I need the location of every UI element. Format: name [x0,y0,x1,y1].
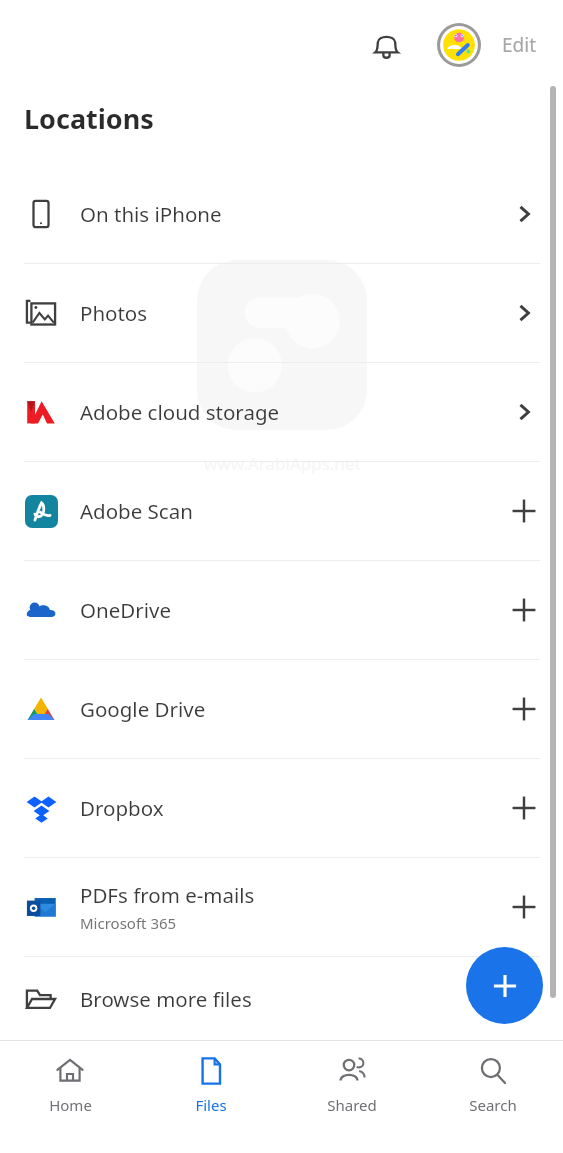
button[interactable]: On this iPhone [0,165,563,263]
button[interactable]: Browse more files [0,957,563,1040]
button[interactable]: Shared [281,1041,422,1153]
staticText: Dropbox [80,794,164,822]
button[interactable]: OneDrive [0,561,563,659]
staticText: Search [469,1095,517,1115]
staticText: Adobe Scan [80,497,193,525]
staticText: OneDrive [80,596,171,624]
staticText: PDFs from e-mails [80,881,255,909]
button[interactable]: Adobe Scan [0,462,563,560]
button[interactable]: Notifications [360,19,412,71]
staticText: Google Drive [80,695,206,723]
staticText: Adobe cloud storage [80,398,280,426]
button[interactable]: PDFs from e-mails [0,858,563,956]
button[interactable]: Adobe cloud storage [0,363,563,461]
button[interactable]: Search [422,1041,563,1153]
button[interactable]: Google Drive [0,660,563,758]
button[interactable]: Home [0,1041,140,1153]
staticText: Home [49,1095,92,1115]
button[interactable]: Files [140,1041,281,1153]
staticText: Files [195,1095,227,1115]
staticText: www.ArabiApps.net [204,452,361,475]
button[interactable]: Create [466,947,543,1024]
staticText: Edit [502,32,537,58]
staticText: Browse more files [80,985,252,1013]
staticText: Microsoft 365 [80,913,177,933]
button[interactable]: Edit [496,26,543,64]
button[interactable]: Dropbox [0,759,563,857]
staticText: Locations [24,100,154,137]
staticText: Photos [80,299,148,327]
button[interactable]: Photos [0,264,563,362]
button[interactable]: Profile [436,22,482,68]
staticText: Shared [327,1095,377,1115]
staticText: On this iPhone [80,200,222,228]
